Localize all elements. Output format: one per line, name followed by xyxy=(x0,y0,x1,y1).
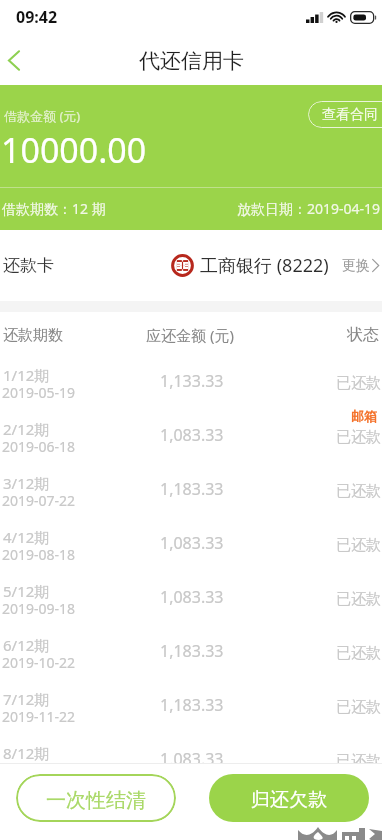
staticText: 09:42 xyxy=(16,6,58,28)
staticText: 1,183.33 xyxy=(160,640,224,662)
staticText: 还款卡 xyxy=(3,255,54,276)
staticText: 1,083.33 xyxy=(160,424,224,446)
staticText: 2019-07-22 xyxy=(2,491,76,510)
staticText: 放款日期：2019-04-19 xyxy=(237,199,381,218)
button[interactable]: 查看合同 xyxy=(308,101,382,128)
staticText: 借款金额 (元) xyxy=(4,107,81,125)
button[interactable]: 4/12期 xyxy=(0,520,382,574)
staticText: 1,133.33 xyxy=(160,370,224,392)
staticText: 3/12期 xyxy=(3,473,50,493)
staticText: 已还款 xyxy=(336,482,381,501)
staticText: 5/12期 xyxy=(3,581,50,601)
button[interactable]: Back xyxy=(0,36,27,85)
staticText: 已还款 xyxy=(336,644,381,663)
button[interactable]: 3/12期 xyxy=(0,466,382,520)
staticText: 2019-06-18 xyxy=(2,437,76,456)
staticText: 已还款 xyxy=(336,590,381,609)
staticText: 2/12期 xyxy=(3,419,50,439)
button[interactable]: 5/12期 xyxy=(0,574,382,628)
staticText: 更换 xyxy=(342,257,370,275)
staticText: 归还欠款 xyxy=(251,788,327,812)
staticText: 查看合同 xyxy=(322,106,378,124)
button[interactable]: 2/12期 xyxy=(0,412,382,466)
button[interactable]: 7/12期 xyxy=(0,682,382,736)
staticText: 1,183.33 xyxy=(160,694,224,716)
staticText: 已还款 xyxy=(336,428,381,447)
staticText: 已还款 xyxy=(336,752,381,771)
staticText: 应还金额 (元) xyxy=(146,325,234,345)
staticText: 4/12期 xyxy=(3,527,50,547)
staticText: 1,083.33 xyxy=(160,586,224,608)
staticText: 1/12期 xyxy=(3,365,50,385)
staticText: 2019-09-18 xyxy=(2,599,76,618)
staticText: 2019-11-22 xyxy=(2,707,76,726)
staticText: 6/12期 xyxy=(3,635,50,655)
staticText: 7/12期 xyxy=(3,689,50,709)
staticText: 已还款 xyxy=(336,536,381,555)
button[interactable]: 1/12期 xyxy=(0,358,382,412)
staticText: 已还款 xyxy=(336,374,381,393)
staticText: 2019-08-18 xyxy=(2,545,76,564)
staticText: 2019-10-22 xyxy=(2,653,76,672)
staticText: 1,083.33 xyxy=(160,532,224,554)
button[interactable]: 6/12期 xyxy=(0,628,382,682)
staticText: 状态 xyxy=(347,325,379,345)
staticText: 代还信用卡 xyxy=(139,48,244,74)
staticText: 2019-05-19 xyxy=(2,383,76,402)
staticText: 8/12期 xyxy=(3,743,50,763)
staticText: 1,083.33 xyxy=(160,748,224,770)
staticText: 10000.00 xyxy=(1,127,147,173)
button[interactable]: 8/12期 xyxy=(0,736,382,790)
button[interactable]: 一次性结清 xyxy=(16,774,176,822)
staticText: 1,183.33 xyxy=(160,478,224,500)
staticText: 邮箱 xyxy=(351,408,377,424)
button[interactable]: 归还欠款 xyxy=(209,774,369,822)
staticText: 2019-12-18 xyxy=(2,761,76,780)
staticText: 已还款 xyxy=(336,698,381,717)
staticText: 一次性结清 xyxy=(46,788,146,813)
button[interactable]: 还款卡 xyxy=(0,230,382,301)
staticText: 还款期数 xyxy=(3,326,63,345)
staticText: 工商银行 (8222) xyxy=(200,253,329,278)
staticText: 借款期数：12 期 xyxy=(2,199,106,218)
